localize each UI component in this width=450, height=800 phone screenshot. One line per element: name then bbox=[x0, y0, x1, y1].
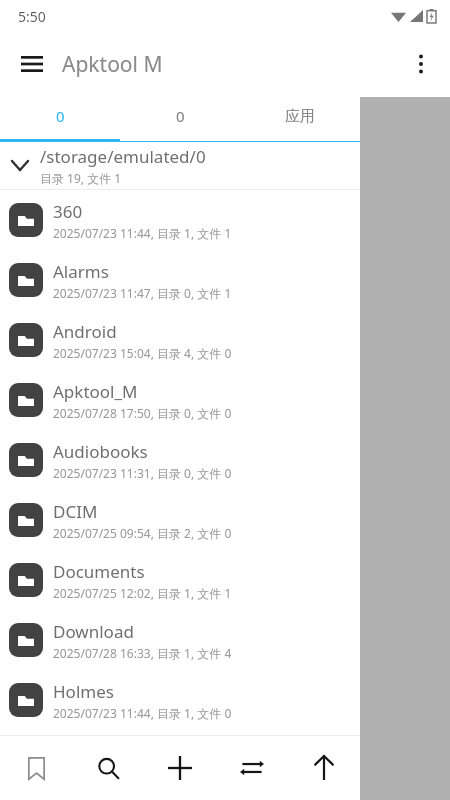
button[interactable]: 360 bbox=[0, 190, 360, 250]
button[interactable]: Holmes bbox=[0, 670, 360, 730]
button[interactable]: Audiobooks bbox=[0, 430, 360, 490]
staticText: 0 bbox=[56, 106, 65, 126]
staticText: 2025/07/25 09:54, 目录 2, 文件 0 bbox=[53, 525, 232, 541]
button[interactable]: /storage/emulated/0 bbox=[0, 142, 360, 189]
staticText: 2025/07/23 11:44, 目录 1, 文件 1 bbox=[53, 225, 232, 241]
staticText: 2025/07/23 11:31, 目录 0, 文件 0 bbox=[53, 465, 232, 481]
button[interactable]: Android bbox=[0, 310, 360, 370]
staticText: 2025/07/25 12:02, 目录 1, 文件 1 bbox=[53, 585, 232, 601]
button[interactable]: Documents bbox=[0, 550, 360, 610]
staticText: 2025/07/23 11:47, 目录 0, 文件 1 bbox=[53, 285, 232, 301]
button[interactable]: Alarms bbox=[0, 250, 360, 310]
staticText: Holmes bbox=[53, 680, 114, 703]
staticText: 目录 19, 文件 1 bbox=[40, 170, 122, 186]
staticText: 应用 bbox=[285, 107, 315, 126]
staticText: 2025/07/23 15:04, 目录 4, 文件 0 bbox=[53, 345, 232, 361]
button[interactable]: Search bbox=[72, 736, 144, 800]
button[interactable]: Bookmarks bbox=[0, 736, 72, 800]
staticText: 2025/07/28 16:33, 目录 1, 文件 4 bbox=[53, 645, 232, 661]
button[interactable]: Open navigation drawer bbox=[8, 40, 56, 88]
button[interactable]: 应用 bbox=[240, 96, 360, 142]
staticText: Audiobooks bbox=[53, 440, 148, 463]
staticText: Apktool_M bbox=[53, 380, 138, 403]
staticText: Download bbox=[53, 620, 134, 643]
staticText: 2025/07/28 17:50, 目录 0, 文件 0 bbox=[53, 405, 232, 421]
staticText: 2025/07/23 11:44, 目录 1, 文件 0 bbox=[53, 705, 232, 721]
staticText: Documents bbox=[53, 560, 145, 583]
button[interactable]: Apktool_M bbox=[0, 370, 360, 430]
button[interactable]: Add bbox=[144, 736, 216, 800]
button[interactable]: Go up bbox=[288, 736, 360, 800]
staticText: 360 bbox=[53, 200, 83, 223]
button[interactable]: Download bbox=[0, 610, 360, 670]
staticText: Android bbox=[53, 320, 117, 343]
staticText: 0 bbox=[176, 106, 185, 126]
staticText: Apktool M bbox=[62, 50, 163, 79]
button[interactable]: 0 bbox=[0, 96, 120, 142]
button[interactable]: DCIM bbox=[0, 490, 360, 550]
staticText: DCIM bbox=[53, 500, 98, 523]
button[interactable]: Transfer bbox=[216, 736, 288, 800]
button[interactable]: More options bbox=[398, 41, 444, 87]
staticText: /storage/emulated/0 bbox=[40, 145, 206, 168]
staticText: 5:50 bbox=[18, 7, 46, 26]
staticText: Alarms bbox=[53, 260, 109, 283]
button[interactable]: 0 bbox=[120, 96, 240, 142]
